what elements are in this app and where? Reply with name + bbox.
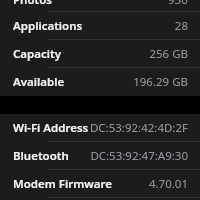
button[interactable]: Available (0, 68, 200, 96)
staticText: 256 GB (149, 46, 188, 62)
staticText: 930 (168, 0, 188, 4)
staticText: Available (13, 74, 65, 90)
button[interactable]: Wi-Fi Address (0, 114, 200, 142)
button[interactable]: Modem Firmware (0, 170, 200, 198)
staticText: Applications (13, 18, 83, 34)
staticText: Wi-Fi Address (13, 120, 89, 136)
staticText: Modem Firmware (13, 176, 112, 192)
button[interactable]: Capacity (0, 40, 200, 68)
staticText: DC:53:92:42:4D:2F (89, 120, 188, 136)
staticText: Photos (13, 0, 52, 4)
button[interactable]: Photos (0, 0, 200, 12)
staticText: 4.70.01 (148, 176, 188, 192)
staticText: Bluetooth (13, 148, 69, 164)
staticText: DC:53:92:47:A9:30 (90, 148, 188, 164)
staticText: Capacity (13, 46, 61, 62)
button[interactable]: Bluetooth (0, 142, 200, 170)
staticText: 196.29 GB (133, 74, 188, 90)
staticText: 28 (174, 18, 188, 34)
button[interactable]: Applications (0, 12, 200, 40)
